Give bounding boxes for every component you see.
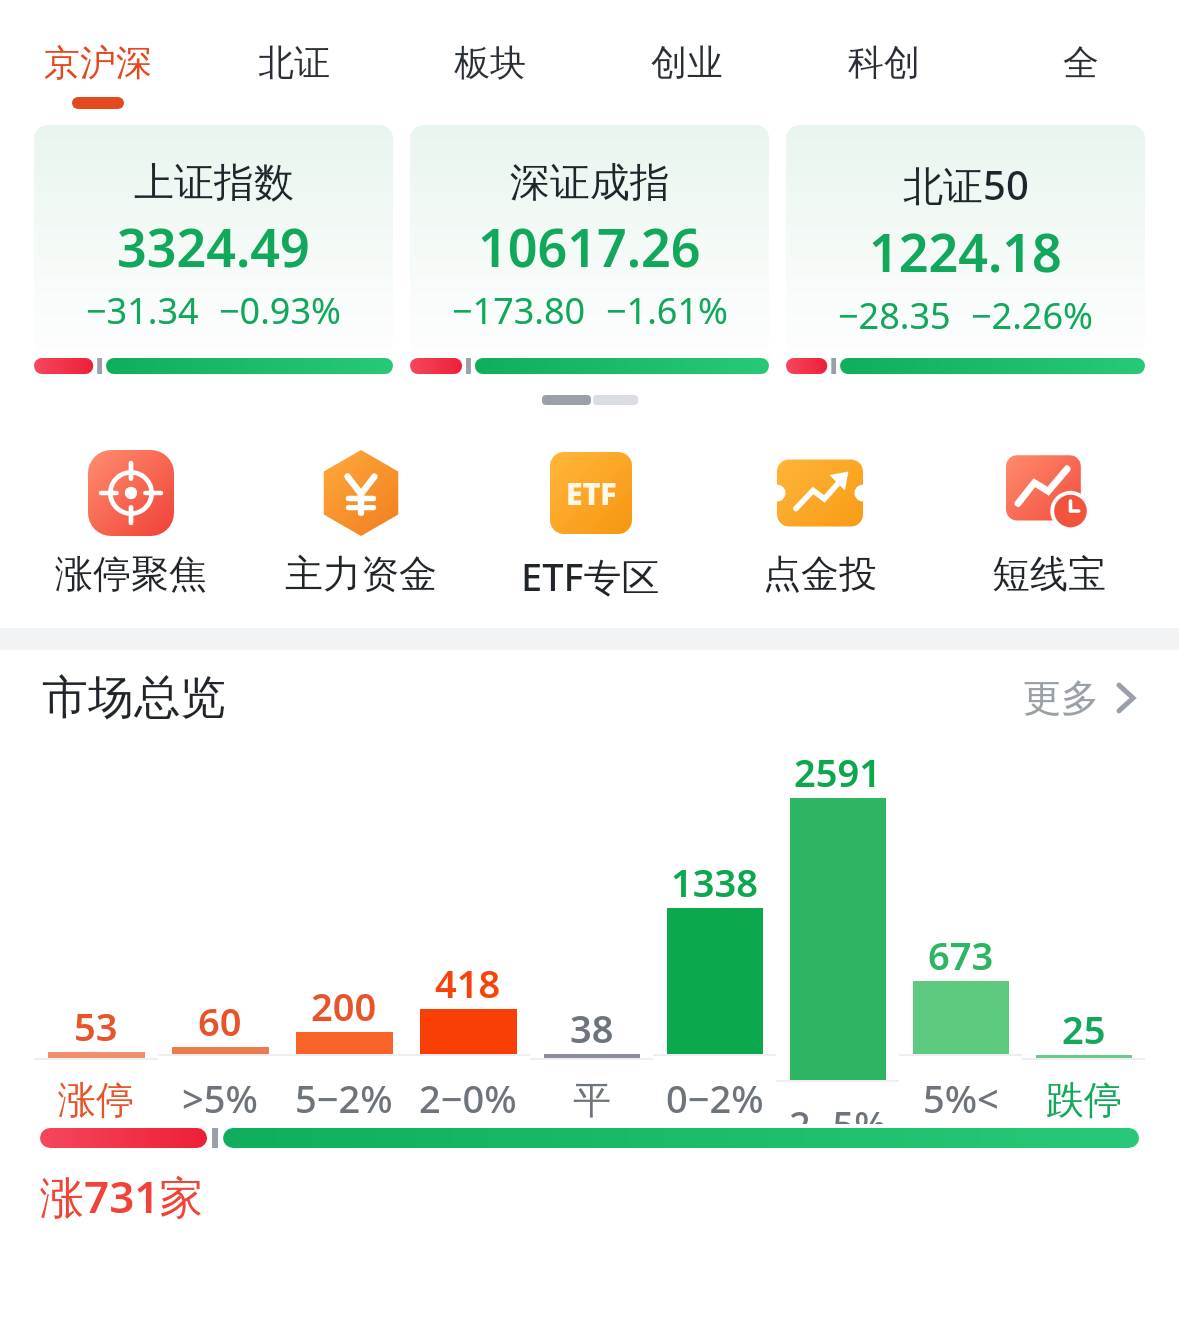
staticText: 创业 xyxy=(651,40,723,85)
button[interactable]: 全 xyxy=(982,0,1179,125)
staticText: 60 xyxy=(198,995,242,1047)
staticText: 京沪深 xyxy=(44,40,152,85)
staticText: 科创 xyxy=(848,40,920,85)
staticText: 5−2% xyxy=(295,1072,393,1124)
staticText: 0−2% xyxy=(666,1072,764,1124)
staticText: 涨731家 xyxy=(40,1166,204,1226)
staticText: 跌停 xyxy=(1046,1076,1122,1124)
button[interactable]: 北证50 xyxy=(786,125,1145,380)
staticText: 上证指数 xyxy=(134,157,294,207)
staticText: 2−0% xyxy=(419,1072,517,1124)
button[interactable]: 上证指数 xyxy=(34,125,393,380)
staticText: 更多 xyxy=(1023,674,1099,722)
button[interactable]: 深证成指 xyxy=(410,125,769,380)
button[interactable]: 涨停聚焦 xyxy=(16,448,246,598)
staticText: 5%< xyxy=(923,1072,999,1124)
staticText: 主力资金 xyxy=(285,550,437,598)
staticText: 平 xyxy=(573,1076,611,1124)
button[interactable]: 短线宝 xyxy=(934,448,1163,598)
button[interactable]: 点金投 xyxy=(705,448,934,598)
staticText: −28.35 xyxy=(838,291,951,340)
staticText: 200 xyxy=(311,980,377,1032)
staticText: 板块 xyxy=(454,40,526,85)
staticText: 市场总览 xyxy=(42,669,226,727)
staticText: 全 xyxy=(1063,40,1099,85)
staticText: 53 xyxy=(74,1000,118,1052)
button[interactable]: 主力资金 xyxy=(246,448,476,598)
staticText: 10617.26 xyxy=(478,211,701,282)
staticText: 673 xyxy=(928,929,994,981)
staticText: −1.61% xyxy=(606,286,728,335)
staticText: −173.80 xyxy=(452,286,586,335)
staticText: 418 xyxy=(435,957,501,1009)
staticText: 2−5% xyxy=(789,1098,887,1124)
staticText: 涨停聚焦 xyxy=(55,550,207,598)
button[interactable]: 板块 xyxy=(392,0,588,125)
staticText: 深证成指 xyxy=(510,157,670,207)
button[interactable]: 科创 xyxy=(785,0,982,125)
staticText: −0.93% xyxy=(219,286,341,335)
staticText: 北证50 xyxy=(903,157,1029,212)
staticText: 短线宝 xyxy=(992,550,1106,598)
staticText: 25 xyxy=(1062,1003,1106,1055)
staticText: 1224.18 xyxy=(869,216,1062,287)
staticText: 2591 xyxy=(794,746,881,798)
staticText: 1338 xyxy=(671,856,758,908)
button[interactable]: 北证 xyxy=(196,0,392,125)
staticText: ETF专区 xyxy=(521,550,660,602)
button[interactable]: 更多 xyxy=(1023,674,1137,722)
staticText: 点金投 xyxy=(763,550,877,598)
staticText: −2.26% xyxy=(971,291,1093,340)
staticText: ETF xyxy=(566,473,617,514)
button[interactable]: ETF专区 xyxy=(476,448,705,602)
staticText: 3324.49 xyxy=(117,211,310,282)
button[interactable]: 京沪深 xyxy=(0,0,196,125)
staticText: 38 xyxy=(570,1002,614,1054)
staticText: 北证 xyxy=(258,40,330,85)
staticText: >5% xyxy=(182,1072,258,1124)
staticText: 涨停 xyxy=(58,1076,134,1124)
staticText: −31.34 xyxy=(86,286,199,335)
button[interactable]: 创业 xyxy=(588,0,785,125)
